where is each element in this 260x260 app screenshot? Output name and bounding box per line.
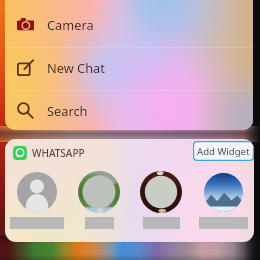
button[interactable] [69, 169, 129, 231]
button[interactable]: New Chat [5, 46, 253, 89]
button[interactable]: Add Widget [193, 141, 254, 161]
button[interactable] [131, 169, 191, 231]
staticText: Add Widget [197, 145, 250, 158]
button[interactable] [193, 169, 253, 231]
button[interactable] [7, 169, 67, 231]
staticText: New Chat [47, 59, 105, 76]
button[interactable]: Camera [5, 3, 253, 46]
button[interactable]: WHATSAPP [13, 146, 85, 160]
button[interactable]: Search [5, 89, 253, 130]
staticText: WHATSAPP [32, 146, 85, 160]
staticText: Search [47, 102, 88, 119]
staticText: Camera [47, 16, 94, 33]
